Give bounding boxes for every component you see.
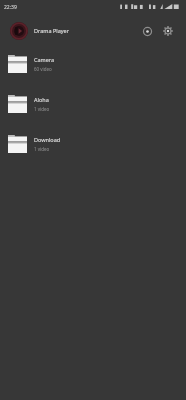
button[interactable]: Settings: [159, 22, 177, 40]
button[interactable]: Download: [0, 124, 186, 164]
staticText: 1 video: [34, 146, 50, 152]
staticText: Camera: [34, 56, 55, 63]
button[interactable]: Aloha: [0, 84, 186, 124]
button[interactable]: Display mode: [138, 22, 156, 40]
staticText: 60 video: [34, 66, 52, 72]
staticText: Drama Player: [34, 27, 69, 34]
button[interactable]: Camera: [0, 44, 186, 84]
staticText: 22:39: [4, 4, 17, 11]
staticText: 1 video: [34, 106, 50, 112]
staticText: Aloha: [34, 96, 49, 103]
staticText: Download: [34, 136, 61, 143]
